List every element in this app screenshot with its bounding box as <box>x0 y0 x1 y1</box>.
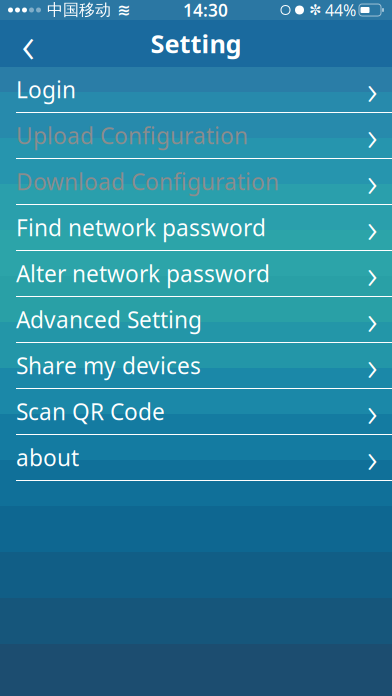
button[interactable]: Back <box>0 20 56 67</box>
button[interactable]: Scan QR Code <box>0 389 392 435</box>
staticText: › <box>367 63 378 116</box>
staticText: 44% <box>325 0 356 21</box>
staticText: ≋ <box>117 1 130 19</box>
staticText: Find network password <box>16 212 266 242</box>
button[interactable]: Find network password <box>0 205 392 251</box>
staticText: Upload Configuration <box>16 120 248 150</box>
staticText: › <box>367 385 378 438</box>
button[interactable]: Upload Configuration <box>0 113 392 159</box>
staticText: Login <box>16 74 76 104</box>
button[interactable]: Share my devices <box>0 343 392 389</box>
staticText: Scan QR Code <box>16 396 165 426</box>
staticText: › <box>367 155 378 208</box>
button[interactable]: about <box>0 435 392 481</box>
staticText: 14:30 <box>183 0 228 21</box>
staticText: › <box>367 109 378 162</box>
button[interactable]: Download Configuration <box>0 159 392 205</box>
staticText: Alter network password <box>16 258 270 288</box>
button[interactable]: Advanced Setting <box>0 297 392 343</box>
staticText: ✼ <box>309 2 321 18</box>
staticText: Share my devices <box>16 350 201 380</box>
staticText: › <box>367 293 378 346</box>
staticText: › <box>367 339 378 392</box>
staticText: Advanced Setting <box>16 304 202 334</box>
staticText: Download Configuration <box>16 166 279 196</box>
button[interactable]: Login <box>0 67 392 113</box>
staticText: › <box>367 431 378 484</box>
staticText: › <box>367 247 378 300</box>
button[interactable]: Alter network password <box>0 251 392 297</box>
staticText: › <box>367 201 378 254</box>
staticText: ‹ <box>21 10 34 77</box>
staticText: 中国移动 <box>47 0 111 20</box>
staticText: Setting <box>150 27 241 60</box>
staticText: about <box>16 442 79 472</box>
